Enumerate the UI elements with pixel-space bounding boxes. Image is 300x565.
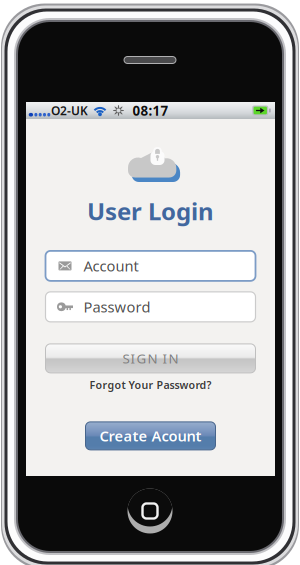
staticText: Account bbox=[83, 256, 138, 276]
button[interactable]: Create Acount bbox=[85, 422, 215, 450]
staticText: O2-UK bbox=[51, 102, 88, 118]
staticText: User Login bbox=[87, 195, 214, 227]
button[interactable]: Account bbox=[45, 251, 255, 281]
button[interactable]: Home bbox=[127, 488, 172, 533]
staticText: Password bbox=[83, 297, 150, 317]
button[interactable]: S I G N I N bbox=[45, 344, 255, 373]
staticText: Create Acount bbox=[99, 426, 201, 446]
staticText: Forgot Your Password? bbox=[89, 378, 211, 392]
staticText: S I G N I N bbox=[122, 349, 178, 367]
button[interactable]: Password bbox=[45, 292, 255, 322]
button[interactable]: Forgot Your Password? bbox=[70, 378, 230, 392]
staticText: 08:17 bbox=[132, 102, 168, 119]
